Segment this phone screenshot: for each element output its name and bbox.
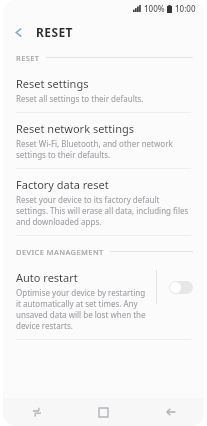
button[interactable]: Auto restart toggle: [157, 270, 204, 304]
staticText: Optimise your device by restarting it au…: [16, 287, 149, 331]
staticText: Reset Wi-Fi, Bluetooth, and other networ…: [16, 138, 190, 160]
button[interactable]: Back: [3, 17, 33, 47]
staticText: 100%: [144, 3, 165, 14]
button[interactable]: Reset network settings: [3, 113, 204, 168]
button[interactable]: Recents: [3, 398, 70, 426]
staticText: Reset your device to its factory default…: [16, 194, 190, 227]
button[interactable]: Reset settings: [3, 68, 204, 112]
staticText: Factory data reset: [16, 177, 109, 192]
staticText: RESET: [16, 53, 40, 63]
staticText: RESET: [36, 24, 73, 40]
staticText: Reset all settings to their defaults.: [16, 93, 144, 104]
staticText: Reset settings: [16, 76, 89, 91]
button[interactable]: Factory data reset: [3, 169, 204, 235]
button[interactable]: Home: [70, 398, 137, 426]
button[interactable]: Back: [137, 398, 204, 426]
staticText: Reset network settings: [16, 121, 134, 136]
staticText: Auto restart: [16, 270, 78, 285]
staticText: 10:00: [175, 3, 196, 14]
button[interactable]: Auto restart: [3, 262, 204, 339]
staticText: DEVICE MANAGEMENT: [16, 247, 104, 257]
